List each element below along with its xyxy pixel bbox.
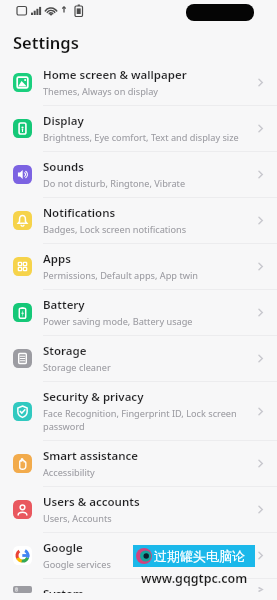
staticText: Do not disturb, Ringtone, Vibrate <box>43 177 186 190</box>
button[interactable]: Battery <box>0 290 277 336</box>
button[interactable]: Display <box>0 106 277 152</box>
other: Display <box>13 119 32 138</box>
staticText: Storage <box>43 343 87 359</box>
other: Apps <box>13 257 32 276</box>
other: Notifications <box>13 211 32 230</box>
staticText: Google services <box>43 558 111 571</box>
button[interactable]: System <box>0 579 277 600</box>
staticText: Home screen & wallpaper <box>43 67 187 83</box>
button[interactable]: Storage <box>0 336 277 382</box>
other: Sounds <box>13 165 32 184</box>
staticText: Security & privacy <box>43 389 144 405</box>
staticText: Apps <box>43 251 71 267</box>
other: Users and accounts <box>13 500 32 519</box>
staticText: Storage cleaner <box>43 361 111 374</box>
other: Home screen and wallpaper <box>13 73 32 92</box>
button[interactable]: Home screen and wallpaper <box>0 60 277 106</box>
staticText: Google <box>43 540 83 556</box>
staticText: Battery <box>43 297 85 313</box>
other: Security and privacy <box>13 402 32 421</box>
staticText: Power saving mode, Battery usage <box>43 315 193 328</box>
staticText: Brightness, Eye comfort, Text and displa… <box>43 131 239 144</box>
button[interactable]: Sounds <box>0 152 277 198</box>
staticText: Users, Accounts <box>43 512 112 525</box>
staticText: Display <box>43 113 84 129</box>
button[interactable]: Security and privacy <box>0 382 277 441</box>
staticText: Notifications <box>43 205 116 221</box>
other: Storage <box>13 349 32 368</box>
other: Google <box>13 546 32 565</box>
staticText: Users & accounts <box>43 494 140 510</box>
button[interactable]: Google <box>0 533 277 579</box>
staticText: Permissions, Default apps, App twin <box>43 269 198 282</box>
staticText: Badges, Lock screen notifications <box>43 223 187 236</box>
button[interactable]: Notifications <box>0 198 277 244</box>
staticText: Accessibility <box>43 466 95 479</box>
staticText: Themes, Always on display <box>43 85 158 98</box>
staticText: 过期罐头电脑论坛 <box>154 548 255 564</box>
staticText: Sounds <box>43 159 84 175</box>
staticText: Face Recognition, Fingerprint ID, Lock s… <box>43 407 237 420</box>
button[interactable]: Apps <box>0 244 277 290</box>
staticText: Smart assistance <box>43 448 138 464</box>
other: Battery <box>13 303 32 322</box>
other: System <box>13 586 32 593</box>
staticText: Settings <box>13 31 79 53</box>
staticText: password <box>43 420 85 433</box>
staticText: System <box>43 586 84 593</box>
button[interactable]: Users and accounts <box>0 487 277 533</box>
button[interactable]: Smart assistance <box>0 441 277 487</box>
other: Smart assistance <box>13 454 32 473</box>
staticText: www.gqgtpc.com <box>141 570 248 587</box>
